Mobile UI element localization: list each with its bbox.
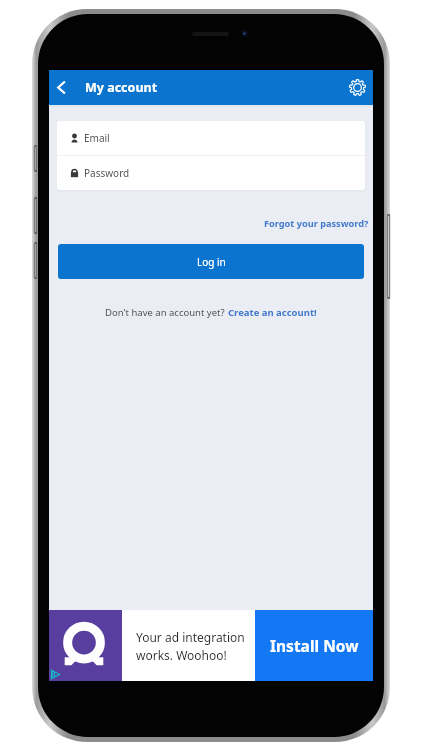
staticText: works. Woohoo! bbox=[136, 647, 227, 663]
staticText: Don't have an account yet? bbox=[105, 306, 228, 319]
staticText: My account bbox=[85, 79, 158, 96]
staticText: Log in bbox=[197, 255, 226, 269]
button[interactable]: Log in bbox=[58, 244, 364, 279]
staticText: Email bbox=[84, 131, 110, 145]
staticText: Your ad integration bbox=[136, 629, 245, 645]
button[interactable]: Back bbox=[47, 70, 75, 105]
button[interactable]: Forgot your password? bbox=[264, 217, 369, 230]
button[interactable]: Password bbox=[57, 156, 365, 190]
button[interactable]: Email bbox=[57, 121, 365, 155]
button[interactable]: Create an account! bbox=[228, 306, 317, 319]
button[interactable]: Install Now bbox=[255, 610, 373, 681]
button[interactable]: Settings bbox=[342, 70, 372, 105]
staticText: Install Now bbox=[270, 635, 359, 656]
staticText: Password bbox=[84, 166, 130, 180]
